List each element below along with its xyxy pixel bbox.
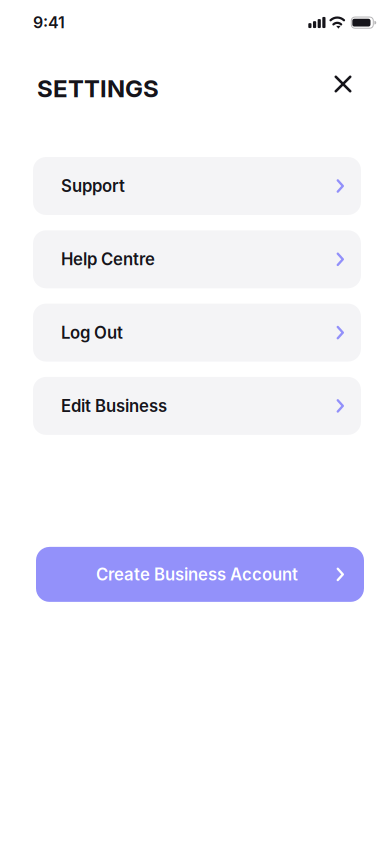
button[interactable]: Support xyxy=(33,157,361,215)
staticText: Log Out xyxy=(61,322,123,343)
button[interactable]: Help Centre xyxy=(33,230,361,288)
staticText: Edit Business xyxy=(61,396,167,416)
button[interactable]: Log Out xyxy=(33,304,361,362)
staticText: Support xyxy=(61,176,125,196)
staticText: Help Centre xyxy=(61,249,155,269)
button[interactable]: Close xyxy=(325,66,361,102)
staticText: Create Business Account xyxy=(96,564,298,584)
button[interactable]: Create Business Account xyxy=(36,547,364,602)
staticText: 9:41 xyxy=(33,13,65,32)
staticText: SETTINGS xyxy=(37,74,159,103)
button[interactable]: Edit Business xyxy=(33,377,361,435)
